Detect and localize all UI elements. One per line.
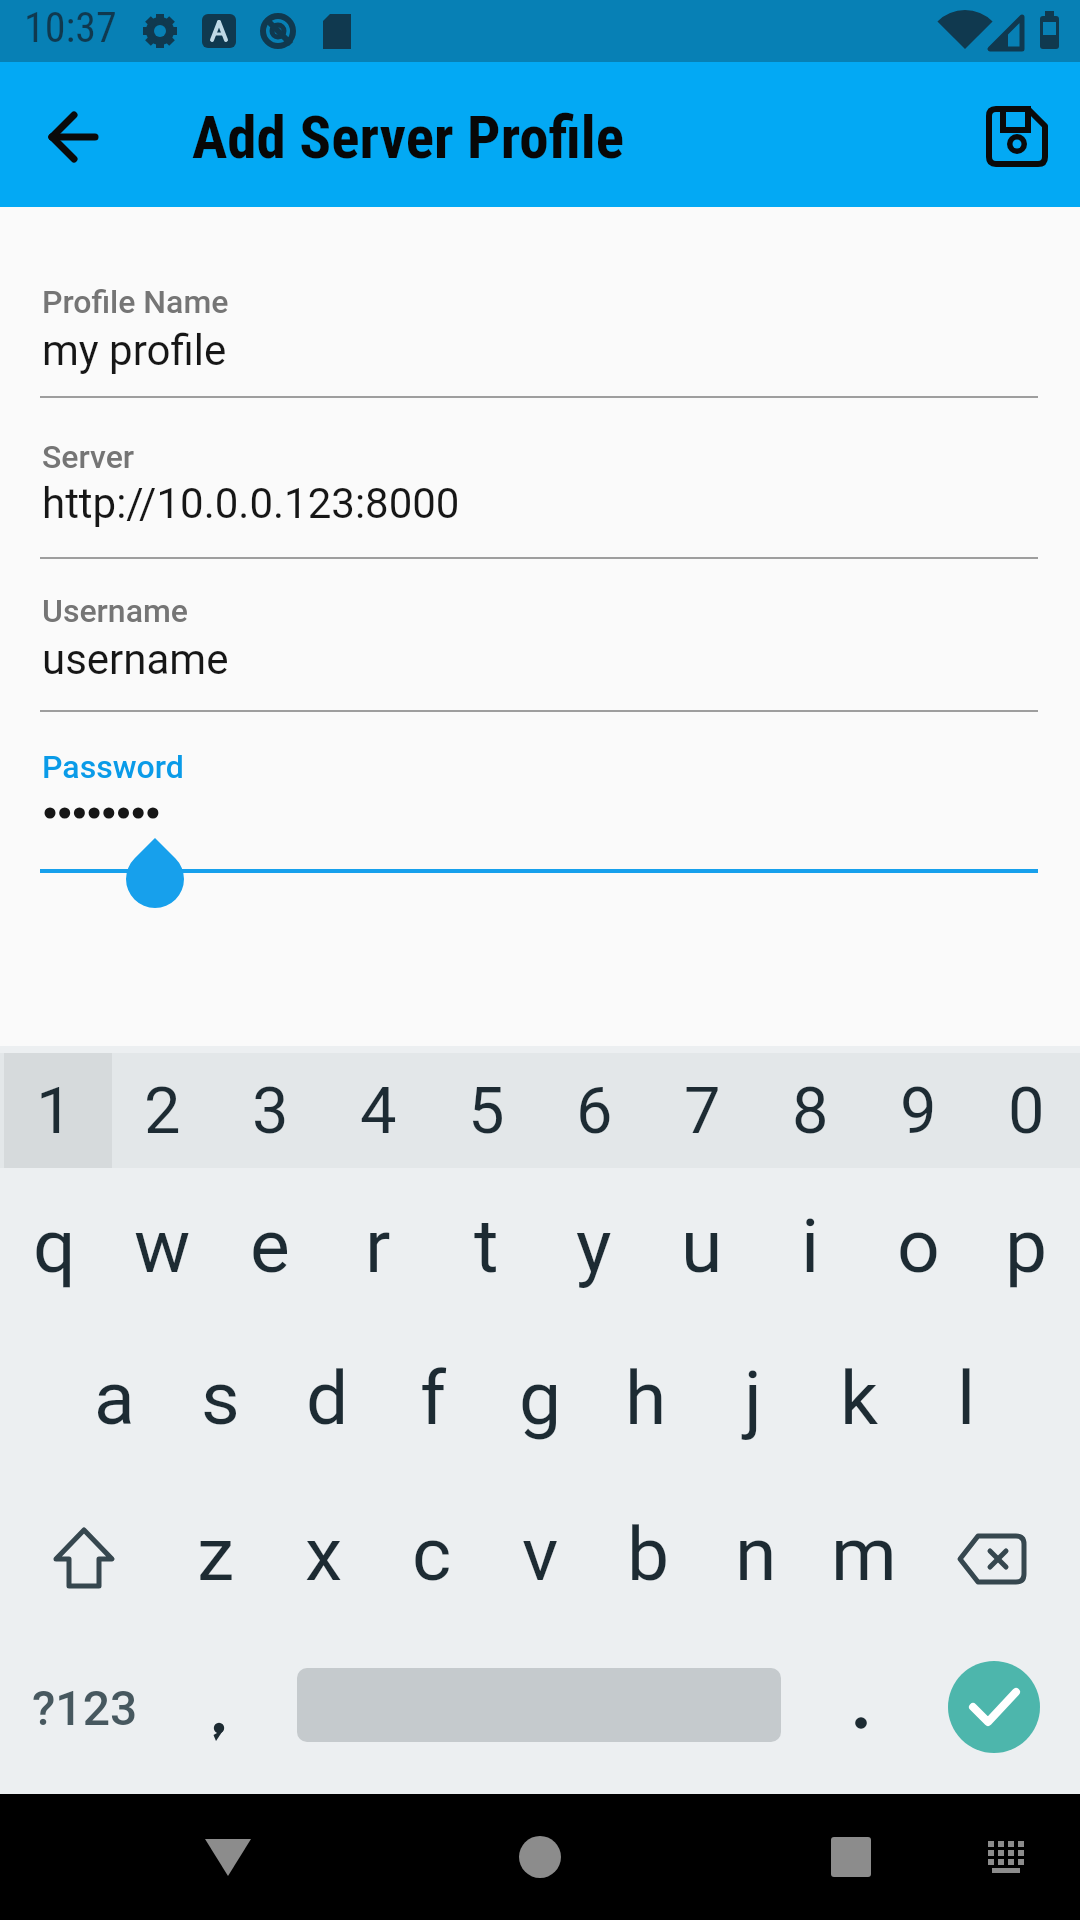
staticText: 6 <box>576 1073 613 1149</box>
staticText: s <box>201 1354 240 1442</box>
staticText: 9 <box>900 1073 937 1149</box>
staticText: x <box>305 1510 343 1598</box>
staticText: Add Server Profile <box>192 103 624 172</box>
staticText: r <box>365 1202 391 1290</box>
staticText: l <box>957 1354 976 1442</box>
staticText: m <box>831 1510 897 1598</box>
staticText: 2 <box>144 1073 181 1149</box>
staticText: 8 <box>792 1073 829 1149</box>
staticText: z <box>197 1510 235 1598</box>
staticText: d <box>306 1354 349 1442</box>
staticText: 3 <box>252 1073 289 1149</box>
staticText: 10:37 <box>24 3 117 52</box>
staticText: n <box>735 1510 777 1598</box>
staticText: c <box>412 1510 452 1598</box>
staticText: u <box>681 1202 723 1290</box>
staticText: f <box>420 1354 447 1442</box>
staticText: my profile <box>42 326 227 375</box>
staticText: e <box>250 1202 290 1290</box>
staticText: username <box>42 635 229 684</box>
staticText: 4 <box>360 1073 397 1149</box>
staticText: q <box>33 1202 76 1290</box>
staticText: k <box>840 1354 879 1442</box>
staticText: v <box>522 1510 559 1598</box>
staticText: 7 <box>684 1073 721 1149</box>
staticText: 1 <box>36 1073 73 1149</box>
staticText: ?123 <box>32 1680 138 1736</box>
staticText: o <box>897 1202 940 1290</box>
staticText: a <box>94 1354 135 1442</box>
staticText: h <box>625 1354 667 1442</box>
staticText: Username <box>42 592 188 630</box>
staticText: g <box>519 1354 562 1442</box>
staticText: 0 <box>1008 1073 1045 1149</box>
staticText: Server <box>42 438 135 476</box>
staticText: i <box>801 1202 820 1290</box>
staticText: Password <box>42 748 184 786</box>
staticText: t <box>474 1202 499 1290</box>
staticText: http://10.0.0.123:8000 <box>42 479 460 528</box>
staticText: j <box>744 1354 762 1442</box>
staticText: Profile Name <box>42 283 229 321</box>
staticText: y <box>576 1202 612 1290</box>
staticText: 5 <box>468 1073 505 1149</box>
staticText: p <box>1005 1202 1048 1290</box>
staticText: b <box>627 1510 670 1598</box>
staticText: w <box>134 1202 191 1290</box>
